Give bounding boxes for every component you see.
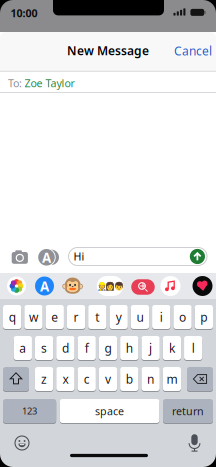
staticText: Cancel: [174, 43, 212, 59]
button[interactable]: Digital Touch: [192, 276, 212, 296]
staticText: v: [105, 371, 111, 387]
staticText: 10:00: [10, 6, 37, 20]
staticText: To:: [8, 76, 22, 90]
staticText: i: [160, 309, 163, 325]
button[interactable]: y: [0, 0, 216, 467]
button[interactable]: Shift: [0, 0, 216, 467]
staticText: p: [200, 309, 207, 325]
staticText: f: [85, 340, 89, 356]
button[interactable]: q: [0, 0, 216, 467]
staticText: c: [84, 371, 90, 387]
button[interactable]: w: [0, 0, 216, 467]
button[interactable]: d: [0, 0, 216, 467]
staticText: m: [166, 371, 177, 387]
staticText: 🐵: [61, 275, 84, 297]
staticText: New Message: [67, 43, 149, 58]
staticText: t: [95, 309, 99, 325]
staticText: y: [116, 309, 122, 325]
button[interactable]: space: [0, 0, 216, 467]
staticText: 123: [22, 405, 37, 417]
staticText: w: [29, 309, 38, 325]
staticText: o: [179, 309, 186, 325]
staticText: 👷: [96, 281, 106, 290]
staticText: j: [149, 340, 152, 356]
button[interactable]: z: [0, 0, 216, 467]
staticText: q: [9, 309, 16, 325]
button[interactable]: j: [0, 0, 216, 467]
button[interactable]: s: [0, 0, 216, 467]
staticText: return: [172, 404, 204, 418]
button[interactable]: c: [0, 0, 216, 467]
staticText: b: [126, 371, 133, 387]
staticText: l: [192, 340, 195, 356]
staticText: e: [51, 309, 58, 325]
button[interactable]: Images: [131, 275, 155, 299]
button[interactable]: n: [0, 0, 216, 467]
staticText: Hi: [73, 249, 84, 263]
button[interactable]: Animoji: [61, 275, 84, 297]
staticText: r: [74, 309, 79, 325]
button[interactable]: u: [0, 0, 216, 467]
button[interactable]: k: [0, 0, 216, 467]
button[interactable]: h: [0, 0, 216, 467]
button[interactable]: p: [0, 0, 216, 467]
button[interactable]: Music: [160, 276, 180, 296]
button[interactable]: Emoji: [13, 434, 31, 452]
button[interactable]: App Store: [35, 276, 54, 295]
button[interactable]: l: [0, 0, 216, 467]
button[interactable]: Memoji: [96, 276, 123, 296]
staticText: g: [104, 340, 111, 356]
button[interactable]: m: [0, 0, 216, 467]
staticText: 👩: [105, 281, 115, 290]
staticText: space: [95, 404, 124, 418]
button[interactable]: x: [0, 0, 216, 467]
staticText: a: [19, 340, 26, 356]
button[interactable]: Send: [190, 249, 205, 264]
staticText: A: [40, 277, 49, 295]
staticText: h: [126, 340, 133, 356]
staticText: n: [147, 371, 154, 387]
staticText: Zoe Taylor: [24, 76, 74, 90]
button[interactable]: return: [0, 0, 216, 467]
button[interactable]: r: [0, 0, 216, 467]
button[interactable]: i: [0, 0, 216, 467]
staticText: 👦: [113, 281, 123, 290]
staticText: s: [41, 340, 47, 356]
staticText: d: [62, 340, 69, 356]
button[interactable]: 123: [0, 0, 216, 467]
button[interactable]: Camera: [11, 248, 28, 264]
staticText: u: [136, 309, 143, 325]
staticText: z: [41, 371, 47, 387]
button[interactable]: v: [0, 0, 216, 467]
button[interactable]: a: [0, 0, 216, 467]
button[interactable]: iMessage apps: [35, 248, 58, 267]
button[interactable]: b: [0, 0, 216, 467]
staticText: A: [42, 249, 51, 266]
staticText: x: [62, 371, 68, 387]
button[interactable]: Dictation: [185, 433, 203, 451]
button[interactable]: Delete: [0, 0, 216, 467]
button[interactable]: Photos: [7, 276, 26, 295]
button[interactable]: Cancel: [174, 43, 212, 59]
button[interactable]: f: [0, 0, 216, 467]
button[interactable]: e: [0, 0, 216, 467]
button[interactable]: g: [0, 0, 216, 467]
button[interactable]: o: [0, 0, 216, 467]
button[interactable]: t: [0, 0, 216, 467]
staticText: k: [169, 340, 175, 356]
